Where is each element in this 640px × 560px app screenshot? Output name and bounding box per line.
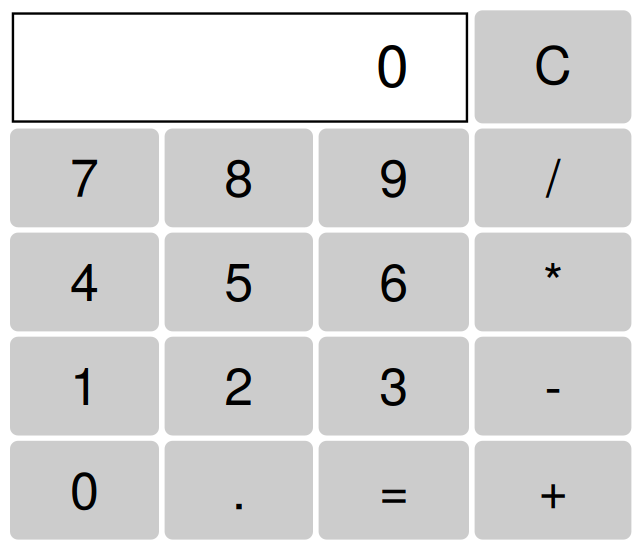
staticText: 5 (224, 241, 253, 316)
button[interactable]: 5 (165, 233, 313, 331)
button[interactable]: 9 (319, 128, 469, 227)
button[interactable]: = (319, 441, 469, 540)
staticText: 9 (379, 137, 408, 212)
button[interactable]: 2 (165, 337, 313, 435)
button[interactable]: 4 (10, 233, 159, 331)
staticText: = (379, 449, 409, 524)
staticText: 7 (70, 137, 99, 212)
staticText: . (232, 449, 246, 524)
button[interactable]: . (165, 441, 313, 540)
button[interactable]: 0 (10, 441, 159, 540)
button[interactable]: 7 (10, 128, 159, 227)
button[interactable]: 3 (319, 337, 469, 435)
button[interactable]: * (475, 233, 631, 331)
button[interactable]: - (475, 337, 631, 435)
staticText: 3 (379, 345, 408, 420)
staticText: 4 (70, 241, 99, 316)
staticText: - (544, 345, 561, 420)
staticText: 6 (379, 241, 408, 316)
button[interactable]: 6 (319, 233, 469, 331)
button[interactable]: C (475, 10, 631, 123)
staticText: + (538, 449, 568, 524)
staticText: * (543, 241, 563, 316)
staticText: 2 (224, 345, 253, 420)
button[interactable]: / (475, 128, 631, 227)
button[interactable]: + (475, 441, 631, 540)
staticText: 0 (376, 20, 409, 104)
staticText: 8 (224, 137, 253, 212)
staticText: / (546, 137, 560, 212)
staticText: 1 (70, 345, 99, 420)
staticText: C (534, 25, 572, 99)
button[interactable]: 1 (10, 337, 159, 435)
staticText: 0 (70, 449, 99, 524)
button[interactable]: 8 (165, 128, 313, 227)
